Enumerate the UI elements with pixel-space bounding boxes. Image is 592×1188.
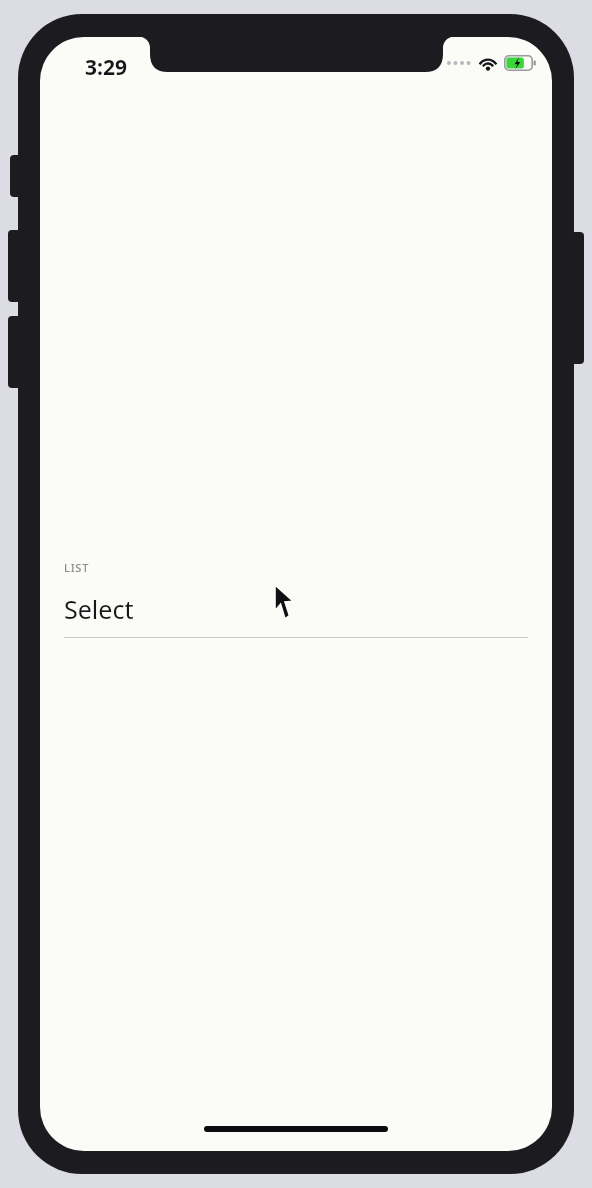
staticText: Select xyxy=(64,592,134,626)
staticText: LIST xyxy=(64,560,90,575)
staticText: 3:29 xyxy=(85,53,127,82)
button[interactable]: LIST xyxy=(64,560,528,638)
